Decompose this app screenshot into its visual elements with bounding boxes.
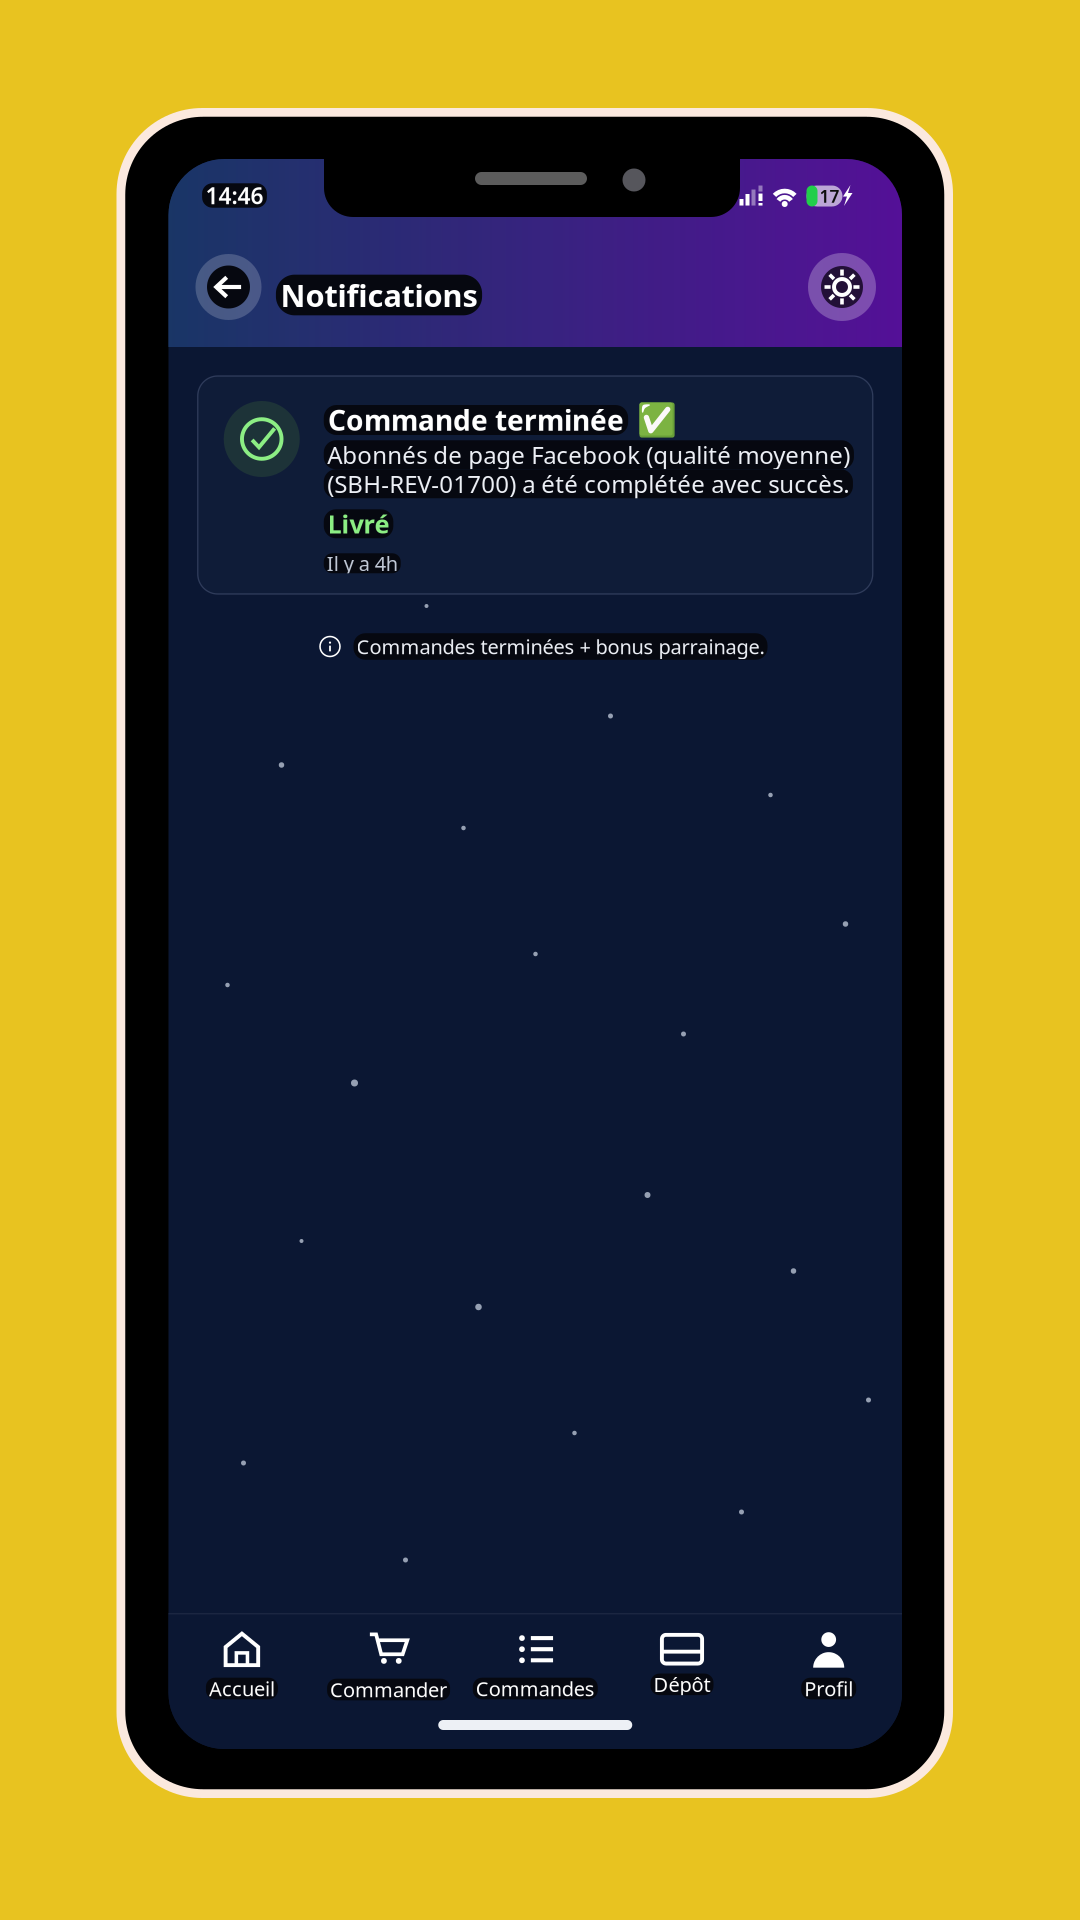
- staticText: Commandes: [476, 1675, 595, 1702]
- staticText: Notifications: [280, 275, 477, 315]
- staticText: Commander: [330, 1676, 447, 1703]
- button[interactable]: Commande terminée: [198, 376, 873, 594]
- staticText: ✅: [637, 402, 677, 438]
- button[interactable]: Profil: [756, 1617, 902, 1713]
- staticText: 17: [819, 184, 839, 207]
- staticText: Profil: [804, 1675, 853, 1702]
- staticText: Il y a 4h: [327, 550, 398, 577]
- staticText: Commande terminée: [328, 401, 624, 439]
- button[interactable]: Commander: [316, 1617, 462, 1713]
- staticText: Livré: [328, 507, 390, 541]
- staticText: Dépôt: [653, 1671, 710, 1698]
- button[interactable]: Commandes: [462, 1617, 608, 1713]
- button[interactable]: Back: [195, 254, 261, 320]
- staticText: Abonnés de page Facebook (qualité moyenn…: [327, 439, 850, 471]
- button[interactable]: Accueil: [169, 1617, 315, 1713]
- staticText: Commandes terminées + bonus parrainage.: [356, 633, 764, 660]
- button[interactable]: Dépôt: [609, 1617, 755, 1713]
- button[interactable]: Brightness: [808, 253, 876, 321]
- staticText: (SBH-REV-01700) a été complétée avec suc…: [327, 468, 849, 500]
- staticText: Accueil: [209, 1675, 275, 1702]
- staticText: 14:46: [205, 180, 263, 210]
